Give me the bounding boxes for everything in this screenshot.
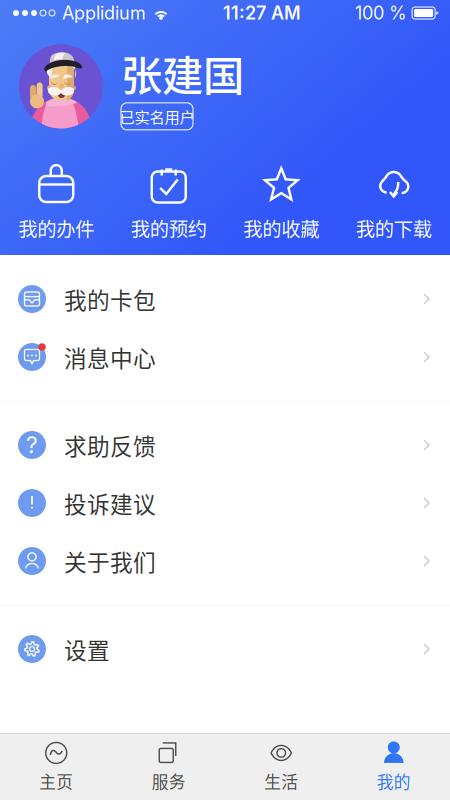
button[interactable]: 消息中心 [0,328,450,386]
button[interactable]: 我的 [337,732,450,800]
staticText: 我的卡包 [64,283,156,315]
staticText: Applidium [62,2,146,24]
staticText: 主页 [39,769,73,793]
staticText: 100 % [355,2,407,24]
button[interactable]: 我的下载 [337,164,450,244]
button[interactable]: 主页 [0,732,112,800]
staticText: 11:27 AM [223,2,301,24]
button[interactable]: 设置 [0,620,450,678]
button[interactable]: 我的预约 [112,164,225,244]
staticText: 设置 [64,633,110,665]
staticText: 已实名用户 [119,105,194,127]
button[interactable]: 已实名用户 [121,103,193,130]
staticText: 服务 [152,769,186,793]
button[interactable]: 我的收藏 [225,164,337,244]
button[interactable]: 服务 [112,732,225,800]
button[interactable]: 关于我们 [0,532,450,590]
button[interactable]: ? [0,416,450,474]
button[interactable]: 我的卡包 [0,270,450,328]
staticText: 生活 [264,769,298,793]
staticText: 我的预约 [131,214,207,242]
staticText: 我的办件 [18,214,94,242]
button[interactable]: 投诉建议 [0,474,450,532]
staticText: 我的下载 [356,214,432,242]
button[interactable]: 生活 [225,732,337,800]
staticText: 投诉建议 [64,487,156,519]
staticText: 关于我们 [64,545,156,577]
staticText: 求助反馈 [64,429,156,461]
staticText: 我的 [377,769,411,793]
staticText: 我的收藏 [243,214,319,242]
button[interactable]: 我的办件 [0,164,112,244]
staticText: ? [26,431,38,459]
staticText: 张建国 [121,43,244,103]
staticText: 消息中心 [64,341,156,373]
